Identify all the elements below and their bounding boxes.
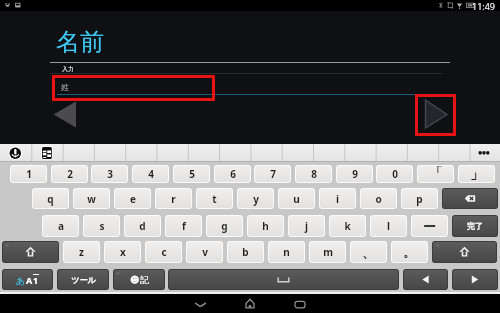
staticText: 5: [189, 167, 195, 181]
staticText: g: [221, 219, 228, 233]
button[interactable]: s: [83, 215, 120, 237]
staticText: n: [283, 245, 290, 259]
staticText: ツール: [71, 275, 96, 285]
staticText: 6: [230, 167, 236, 181]
button[interactable]: ツール: [57, 269, 109, 290]
staticText: d: [139, 219, 146, 233]
staticText: j: [305, 219, 308, 233]
staticText: a: [58, 219, 64, 233]
button[interactable]: 、: [350, 241, 387, 263]
staticText: r: [171, 192, 176, 206]
staticText: k: [344, 219, 351, 233]
staticText: 完了: [467, 221, 483, 231]
button[interactable]: Space: [168, 269, 399, 290]
button[interactable]: a: [42, 215, 79, 237]
button[interactable]: q: [32, 188, 69, 209]
staticText: f: [182, 219, 186, 233]
button[interactable]: Shift: [2, 241, 59, 263]
button[interactable]: i: [319, 188, 356, 209]
button[interactable]: l: [370, 215, 407, 237]
button[interactable]: 0: [376, 165, 413, 183]
button[interactable]: Next: [415, 94, 456, 136]
button[interactable]: Recent apps: [288, 294, 312, 313]
staticText: 名前: [56, 27, 104, 57]
button[interactable]: 7: [254, 165, 291, 183]
staticText: c: [161, 245, 167, 259]
button[interactable]: g: [206, 215, 243, 237]
button[interactable]: o: [360, 188, 397, 209]
staticText: 8: [311, 167, 317, 181]
button[interactable]: z: [63, 241, 100, 263]
button[interactable]: Suggestions: [0, 144, 500, 161]
button[interactable]: 6: [214, 165, 251, 183]
staticText: 姓: [61, 82, 69, 92]
staticText: b: [242, 245, 249, 259]
staticText: l: [387, 219, 390, 233]
button[interactable]: v: [186, 241, 223, 263]
button[interactable]: Cursor left: [403, 269, 448, 290]
button[interactable]: e: [114, 188, 151, 209]
staticText: 7: [270, 167, 276, 181]
staticText: z: [79, 245, 84, 259]
staticText: 9: [352, 167, 358, 181]
button[interactable]: 4: [132, 165, 169, 183]
button[interactable]: n: [268, 241, 305, 263]
button[interactable]: m: [309, 241, 346, 263]
staticText: A: [26, 274, 33, 286]
button[interactable]: h: [247, 215, 284, 237]
button[interactable]: 2: [51, 165, 88, 183]
button[interactable]: r: [155, 188, 192, 209]
button[interactable]: 8: [295, 165, 332, 183]
button[interactable]: b: [227, 241, 264, 263]
staticText: ー: [423, 218, 436, 234]
staticText: u: [293, 192, 300, 206]
button[interactable]: Cursor right: [452, 269, 498, 290]
button[interactable]: Shift: [432, 241, 497, 263]
staticText: ☻: [130, 275, 140, 285]
button[interactable]: 3: [91, 165, 128, 183]
button[interactable]: 。: [391, 241, 428, 263]
staticText: 「: [429, 165, 443, 183]
button[interactable]: k: [329, 215, 366, 237]
button[interactable]: j: [288, 215, 325, 237]
staticText: y: [253, 192, 259, 206]
button[interactable]: Back: [188, 294, 212, 313]
button[interactable]: f: [165, 215, 202, 237]
staticText: t: [212, 192, 217, 206]
button[interactable]: y: [237, 188, 274, 209]
staticText: h: [262, 219, 269, 233]
staticText: x: [120, 245, 126, 259]
staticText: 」: [470, 165, 484, 183]
staticText: 0: [392, 167, 398, 181]
staticText: 、: [362, 244, 375, 260]
staticText: m: [323, 245, 333, 259]
button[interactable]: Home: [238, 294, 262, 313]
button[interactable]: 1: [10, 165, 47, 183]
button[interactable]: p: [401, 188, 438, 209]
button[interactable]: 「: [417, 165, 454, 183]
button[interactable]: d: [124, 215, 161, 237]
button[interactable]: 」: [458, 165, 495, 183]
staticText: 4: [148, 167, 154, 181]
button[interactable]: Previous: [50, 98, 80, 131]
staticText: 入力: [62, 65, 74, 73]
staticText: 1: [33, 274, 39, 286]
button[interactable]: Backspace: [442, 188, 498, 209]
button[interactable]: ー: [411, 215, 448, 237]
button[interactable]: u: [278, 188, 315, 209]
button[interactable]: c: [145, 241, 182, 263]
button[interactable]: w: [73, 188, 110, 209]
button[interactable]: 9: [336, 165, 373, 183]
button[interactable]: 完了: [452, 215, 498, 237]
staticText: p: [416, 192, 423, 206]
button[interactable]: Change input mode: [2, 269, 53, 290]
button[interactable]: t: [196, 188, 233, 209]
staticText: o: [375, 192, 382, 206]
button[interactable]: 5: [173, 165, 210, 183]
staticText: e: [130, 192, 136, 206]
button[interactable]: x: [104, 241, 141, 263]
staticText: 1: [26, 167, 32, 181]
button[interactable]: Emoji / symbols: [113, 269, 165, 290]
staticText: 2: [67, 167, 73, 181]
staticText: 。: [403, 244, 416, 260]
